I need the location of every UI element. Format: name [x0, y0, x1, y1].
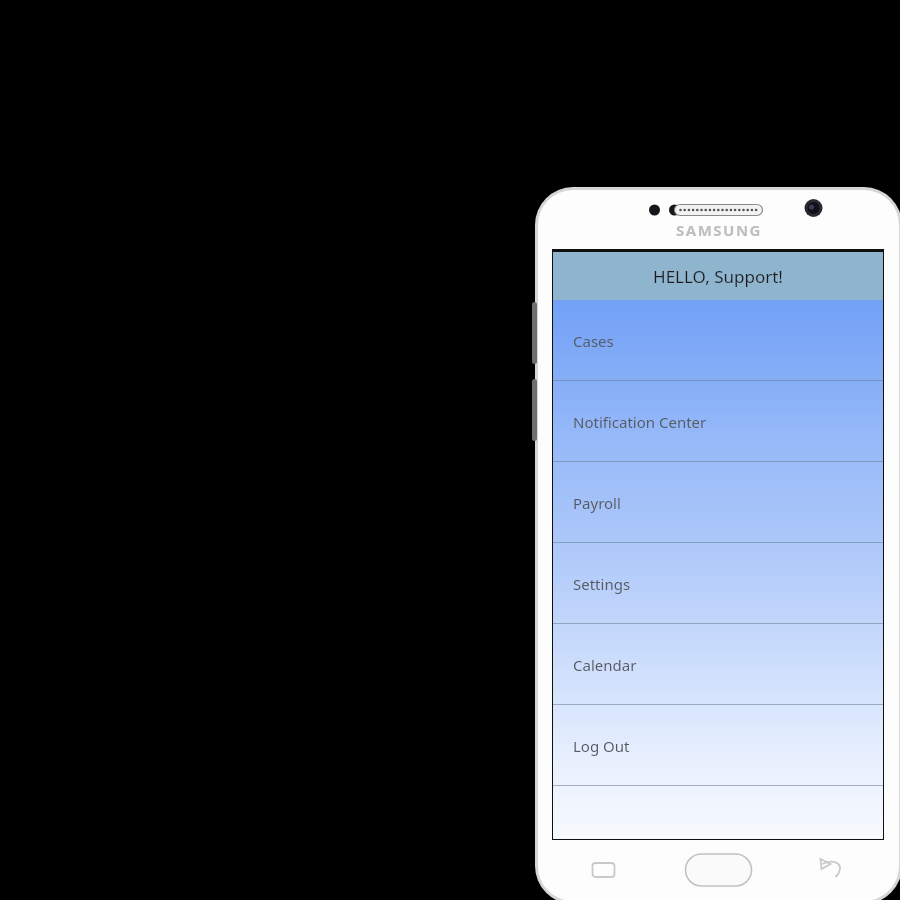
button[interactable]: Settings [553, 543, 883, 624]
staticText: SAMSUNG [676, 220, 762, 240]
button[interactable]: HELLO, Support! [553, 252, 883, 300]
staticText: Settings [573, 574, 631, 594]
button[interactable]: Log Out [553, 705, 883, 786]
button[interactable]: Notification Center [553, 381, 883, 462]
staticText: Log Out [573, 736, 630, 756]
staticText: Payroll [573, 493, 621, 513]
button[interactable]: Payroll [553, 462, 883, 543]
staticText: HELLO, Support! [653, 265, 783, 288]
staticText: Notification Center [573, 412, 707, 432]
button[interactable]: Cases [553, 300, 883, 381]
staticText: Cases [573, 331, 614, 351]
button[interactable]: Calendar [553, 624, 883, 705]
staticText: Calendar [573, 655, 637, 675]
